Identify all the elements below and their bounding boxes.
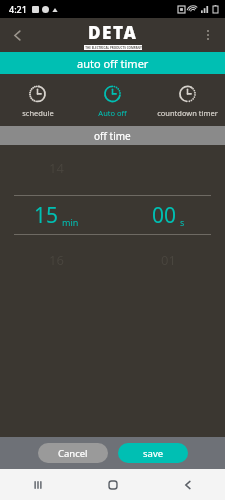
staticText: Auto off [98,108,127,118]
button[interactable]: 15 [0,196,112,234]
button[interactable]: save [118,443,188,463]
button[interactable]: Home [75,469,150,500]
staticText: 14 [49,159,64,177]
staticText: 15 [34,201,59,230]
button[interactable]: More options [191,18,225,52]
staticText: 00 [152,201,177,230]
staticText: THE ELECTRICAL PRODUCTS COMPANY [85,46,142,50]
staticText: 16 [49,251,64,269]
staticText: min [62,216,79,228]
button[interactable]: schedule [0,74,75,126]
staticText: 01 [161,251,176,269]
button[interactable]: Back [150,469,225,500]
staticText: s [180,216,185,228]
button[interactable]: Recent apps [0,469,75,500]
button[interactable]: Back [0,18,34,52]
staticText: save [143,447,164,460]
button[interactable]: Cancel [38,443,108,463]
staticText: countdown timer [157,108,218,118]
button[interactable]: countdown timer [150,74,225,126]
staticText: Cancel [58,447,88,460]
staticText: 4:21 [9,3,27,15]
staticText: auto off timer [77,56,149,71]
staticText: schedule [22,108,54,118]
staticText: DETA [88,21,138,44]
button[interactable]: 00 [112,196,225,234]
button[interactable]: Auto off [75,74,150,126]
staticText: off time [94,129,131,143]
